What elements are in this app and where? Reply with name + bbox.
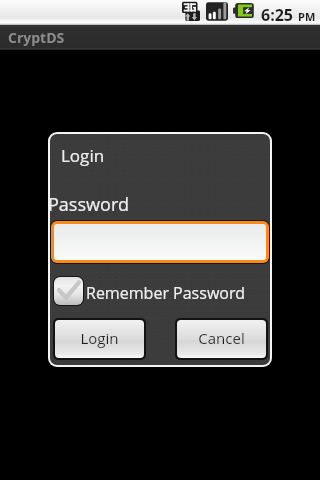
button[interactable]: Remember Password (53, 276, 245, 306)
other: 3G network (182, 1, 201, 21)
staticText: Password (48, 192, 129, 217)
staticText: PM (298, 9, 316, 24)
staticText: 6:25 (261, 4, 293, 26)
other: Battery charging (233, 3, 254, 18)
other: Signal strength (206, 1, 228, 21)
staticText: Login (80, 328, 119, 348)
staticText: Cancel (198, 328, 245, 348)
button[interactable]: Cancel (177, 320, 266, 358)
button[interactable]: Login (55, 320, 144, 358)
button[interactable] (54, 224, 266, 260)
staticText: Login (61, 144, 105, 167)
staticText: CryptDS (8, 28, 65, 47)
staticText: Remember Password (86, 282, 245, 304)
